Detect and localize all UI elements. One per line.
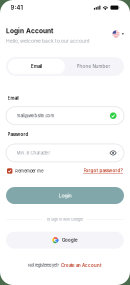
staticText: Not registered yet? (28, 263, 59, 268)
button[interactable]: Google (6, 232, 124, 249)
staticText: Login Account (6, 27, 53, 35)
staticText: Google (62, 238, 78, 243)
staticText: Password (7, 132, 28, 137)
staticText: Min. 8 Character (16, 150, 50, 155)
button[interactable]: Phone Number (65, 59, 122, 74)
staticText: or Sign in with Google (47, 217, 83, 222)
button[interactable]: Remember me (7, 168, 43, 174)
button[interactable]: Login (6, 187, 124, 204)
staticText: Forgot password? (83, 168, 122, 173)
button[interactable]: Email (8, 59, 65, 74)
staticText: Remember me (15, 169, 43, 173)
button[interactable]: Forgot password? (83, 168, 123, 174)
staticText: mail@website.com (16, 113, 54, 118)
staticText: Hello, welcome back to our account (6, 38, 90, 44)
staticText: Create an Account (61, 263, 102, 268)
button[interactable]: Select country (112, 27, 124, 37)
staticText: Phone Number (76, 64, 110, 69)
staticText: Login (58, 192, 71, 199)
button[interactable]: Show password (110, 150, 116, 156)
staticText: Email (31, 64, 42, 69)
staticText: 9:41 (10, 4, 22, 11)
button[interactable]: Create an Account (61, 263, 102, 268)
staticText: Email (7, 95, 18, 101)
